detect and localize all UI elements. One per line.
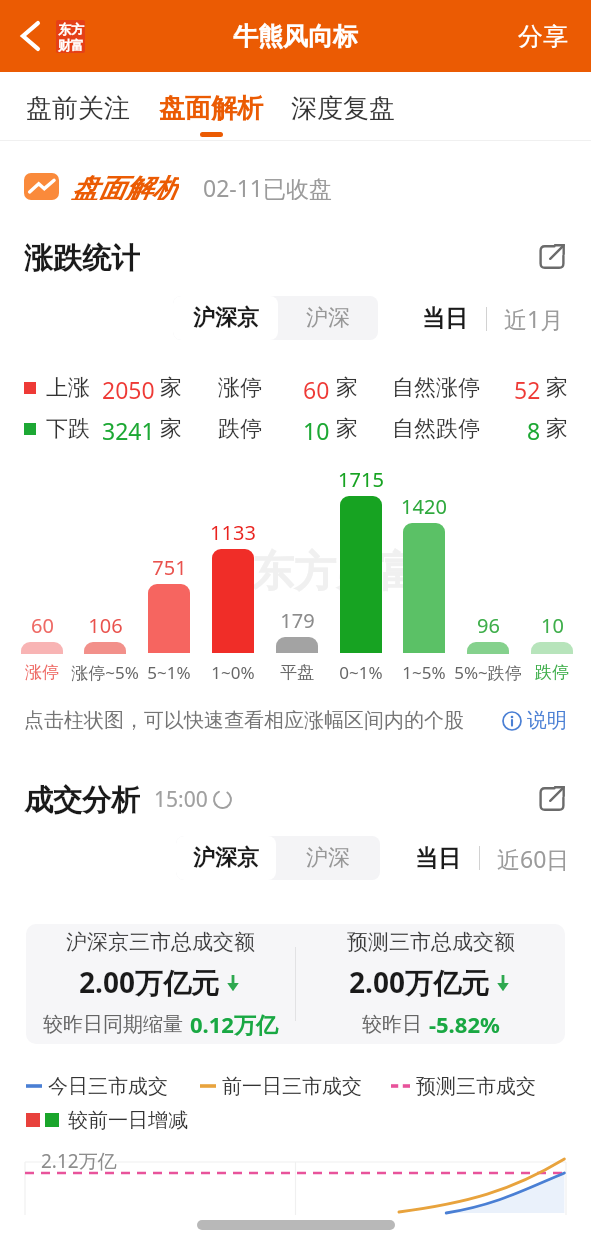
button[interactable]	[212, 549, 254, 653]
staticText: 较前一日增减	[68, 1108, 188, 1133]
button[interactable]: 近60日	[495, 836, 572, 880]
button[interactable]	[84, 642, 126, 654]
staticText: 2.12万亿	[41, 1148, 117, 1174]
staticText: 家	[546, 415, 568, 443]
staticText: 10	[303, 415, 330, 443]
staticText: 分享	[518, 21, 568, 52]
staticText: 家	[336, 415, 358, 443]
button[interactable]	[148, 584, 190, 653]
staticText: 东方财富	[252, 546, 420, 599]
staticText: 1420	[401, 493, 447, 517]
staticText: 盘前关注	[26, 92, 130, 125]
staticText: 上涨	[46, 374, 90, 402]
staticText: 前一日三市成交	[222, 1074, 362, 1099]
staticText: 1133	[210, 519, 256, 543]
staticText: 跌停	[218, 415, 262, 443]
staticText: 沪深京三市总成交额	[66, 929, 255, 955]
button[interactable]: Back	[8, 14, 52, 58]
staticText: 0.12万亿	[190, 1009, 278, 1039]
button[interactable]: 当日	[413, 837, 463, 880]
staticText: 家	[336, 374, 358, 402]
button[interactable]	[531, 642, 573, 654]
staticText: 5~1%	[147, 661, 191, 683]
staticText: 较昨日同期缩量	[43, 1012, 183, 1037]
staticText: 自然跌停	[392, 415, 480, 443]
button[interactable]: 沪深京	[176, 836, 276, 880]
staticText: 沪深京	[193, 304, 259, 332]
button[interactable]: 沪深	[278, 296, 378, 340]
staticText: 0~1%	[339, 661, 383, 683]
button[interactable]: 当日	[420, 297, 470, 340]
button[interactable]	[340, 496, 382, 653]
staticText: 1715	[338, 466, 384, 490]
button[interactable]: 分享	[498, 13, 591, 60]
staticText: 较昨日	[362, 1012, 422, 1037]
button[interactable]	[403, 523, 445, 653]
staticText: 751	[152, 554, 187, 578]
staticText: 2.00万亿元	[79, 963, 219, 1001]
staticText: 下跌	[46, 415, 90, 443]
button[interactable]: 沪深	[276, 836, 380, 880]
staticText: 家	[160, 415, 182, 443]
button[interactable]: Open	[537, 784, 567, 814]
staticText: 8	[527, 415, 541, 443]
staticText: 涨停~5%	[71, 661, 139, 683]
staticText: 涨跌统计	[24, 240, 140, 274]
staticText: 106	[88, 612, 123, 636]
staticText: 点击柱状图，可以快速查看相应涨幅区间内的个股	[24, 708, 464, 733]
staticText: 3241	[102, 415, 155, 443]
staticText: 跌停	[535, 662, 569, 683]
staticText: 家	[546, 374, 568, 402]
staticText: 2050	[102, 374, 155, 402]
staticText: 02-11已收盘	[203, 172, 333, 200]
staticText: 52	[514, 374, 541, 402]
button[interactable]: 东方	[56, 20, 85, 53]
staticText: 15:00	[154, 785, 208, 814]
staticText: 预测三市成交	[416, 1074, 536, 1099]
button[interactable]: 盘面解析	[159, 72, 263, 137]
staticText: 说明	[527, 708, 567, 733]
button[interactable]: Open	[537, 242, 567, 272]
staticText: 家	[160, 374, 182, 402]
staticText: 近1月	[504, 303, 564, 334]
staticText: 60	[31, 612, 54, 636]
button[interactable]	[21, 642, 63, 654]
staticText: 当日	[422, 304, 468, 333]
staticText: 成交分析	[24, 782, 140, 816]
staticText: 5%~跌停	[454, 661, 522, 683]
button[interactable]: 盘前关注	[26, 72, 130, 137]
staticText: 当日	[415, 844, 461, 873]
staticText: 今日三市成交	[48, 1074, 168, 1099]
staticText: 1~5%	[402, 661, 446, 683]
staticText: 涨停	[218, 374, 262, 402]
staticText: 1~0%	[211, 661, 255, 683]
staticText: 96	[477, 612, 500, 636]
staticText: 盘面解析	[71, 172, 179, 200]
staticText: -5.82%	[429, 1009, 500, 1039]
staticText: 财富	[58, 37, 84, 53]
staticText: 平盘	[280, 662, 314, 683]
button[interactable]: 说明	[502, 708, 567, 733]
staticText: 沪深	[306, 844, 350, 872]
staticText: 自然涨停	[392, 374, 480, 402]
button[interactable]: 深度复盘	[291, 72, 395, 137]
button[interactable]: 近1月	[502, 296, 566, 341]
staticText: 牛熊风向标	[233, 21, 358, 52]
staticText: 深度复盘	[291, 92, 395, 125]
staticText: 涨停	[25, 662, 59, 683]
button[interactable]	[276, 637, 318, 653]
button[interactable]	[467, 642, 509, 654]
staticText: 近60日	[497, 843, 570, 873]
staticText: 沪深京	[193, 844, 259, 872]
staticText: 盘面解析	[159, 92, 263, 125]
staticText: 东方	[58, 21, 84, 37]
button[interactable]: 沪深京	[173, 296, 278, 340]
staticText: 10	[541, 612, 564, 636]
staticText: 预测三市总成交额	[347, 929, 515, 955]
staticText: 沪深	[306, 304, 350, 332]
staticText: 60	[303, 374, 330, 402]
staticText: 179	[280, 607, 315, 631]
staticText: 2.00万亿元	[349, 963, 489, 1001]
